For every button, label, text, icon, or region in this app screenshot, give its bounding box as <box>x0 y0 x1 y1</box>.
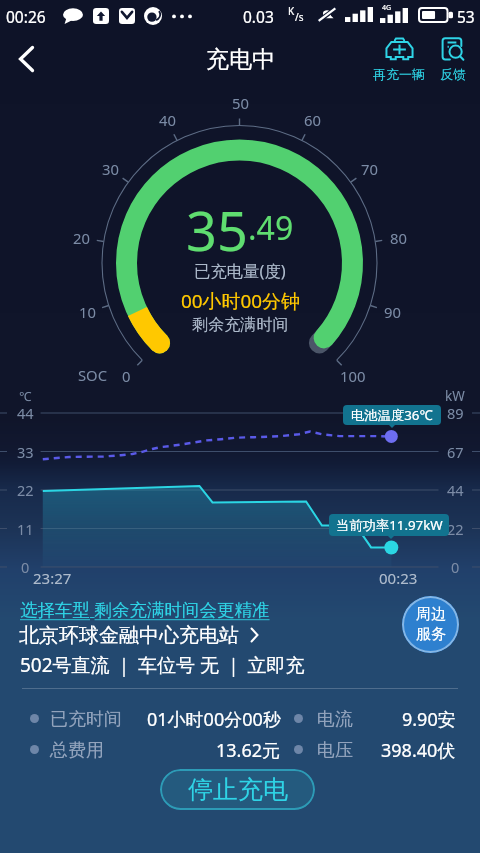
staticText: 周边 <box>416 605 446 624</box>
button[interactable]: 选择车型 剩余充满时间会更精准 <box>20 597 270 621</box>
button[interactable]: 周边 <box>402 596 459 653</box>
staticText: 已充电量(度) <box>194 259 286 281</box>
staticText: 北京环球金融中心充电站 <box>19 623 239 648</box>
staticText: 剩余充满时间 <box>192 314 289 334</box>
staticText: 10 <box>79 302 96 322</box>
staticText: SOC <box>78 365 108 385</box>
staticText: kW <box>445 387 465 405</box>
staticText: 53 <box>457 6 475 27</box>
staticText: 44 <box>447 480 464 500</box>
staticText: /s <box>295 10 304 24</box>
staticText: 398.40伏 <box>381 738 456 763</box>
staticText: 11 <box>17 519 34 539</box>
staticText: 100 <box>340 366 366 386</box>
staticText: 23:27 <box>33 568 72 588</box>
staticText: 选择车型 剩余充满时间会更精准 <box>20 597 270 621</box>
staticText: 0 <box>122 366 131 386</box>
staticText: 已充时间 <box>50 708 122 731</box>
staticText: K <box>288 4 295 18</box>
staticText: 00:23 <box>379 568 418 588</box>
staticText: 22 <box>17 480 34 500</box>
staticText: 00:26 <box>6 6 46 27</box>
staticText: 01小时00分00秒 <box>147 707 281 732</box>
staticText: 4G <box>382 3 392 13</box>
staticText: 电流 <box>317 708 353 731</box>
staticText: 总费用 <box>50 739 104 762</box>
button[interactable]: 再充一辆 <box>371 36 427 82</box>
staticText: 70 <box>361 159 378 179</box>
staticText: 电池温度36℃ <box>351 406 433 424</box>
staticText: 13.62元 <box>216 738 281 763</box>
staticText: 停止充电 <box>188 774 288 805</box>
staticText: 0 <box>451 557 460 577</box>
staticText: .49 <box>248 206 294 250</box>
button[interactable]: 停止充电 <box>160 769 315 810</box>
staticText: 服务 <box>416 625 446 644</box>
staticText: 89 <box>447 403 464 423</box>
staticText: 35 <box>186 193 248 255</box>
staticText: 电压 <box>317 739 353 762</box>
staticText: 502号直流 ｜ 车位号 无 ｜ 立即充 <box>20 652 305 678</box>
staticText: 充电中 <box>206 45 275 73</box>
button[interactable]: Back <box>4 36 49 81</box>
staticText: 当前功率11.97kW <box>336 516 443 534</box>
staticText: 反馈 <box>440 66 466 82</box>
staticText: 再充一辆 <box>373 66 425 82</box>
staticText: 20 <box>73 228 90 248</box>
button[interactable]: 北京环球金融中心充电站 <box>19 622 259 648</box>
button[interactable]: 反馈 <box>437 36 469 82</box>
staticText: 80 <box>390 228 407 248</box>
staticText: 44 <box>17 403 34 423</box>
staticText: ℃ <box>19 388 32 405</box>
staticText: 67 <box>447 442 464 462</box>
staticText: 0 <box>21 557 30 577</box>
staticText: 9.90安 <box>402 707 456 732</box>
staticText: 90 <box>384 302 401 322</box>
staticText: 22 <box>447 519 464 539</box>
staticText: 60 <box>304 110 321 130</box>
staticText: 30 <box>102 159 119 179</box>
staticText: 33 <box>17 442 34 462</box>
staticText: 0.03 <box>243 6 274 27</box>
staticText: 00小时00分钟 <box>181 288 300 314</box>
staticText: 40 <box>159 110 176 130</box>
staticText: 50 <box>232 93 249 113</box>
